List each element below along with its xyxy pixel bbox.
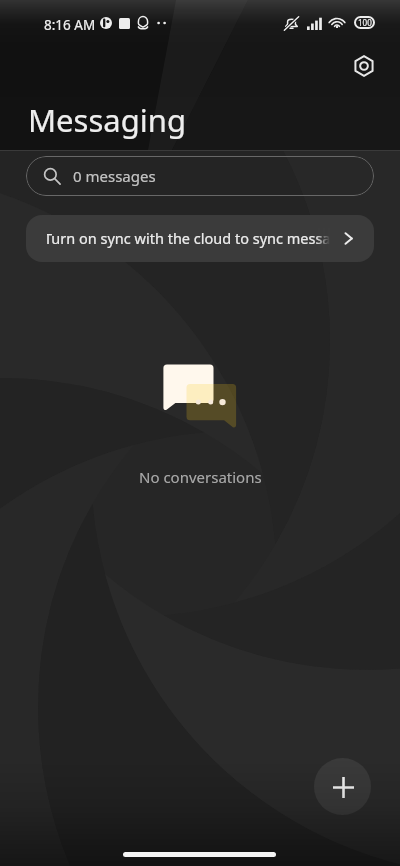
staticText: Messaging bbox=[28, 99, 186, 141]
staticText: No conversations bbox=[139, 467, 262, 487]
staticText: 0 messages bbox=[73, 166, 156, 186]
staticText: 8:16 AM bbox=[44, 16, 96, 34]
staticText: Turn on sync with the cloud to sync mess… bbox=[47, 228, 330, 248]
button[interactable]: Settings bbox=[344, 46, 384, 86]
button[interactable]: 0 messages bbox=[26, 156, 374, 196]
button[interactable]: Turn on sync with the cloud to sync mess… bbox=[26, 215, 374, 262]
staticText: 100 bbox=[358, 17, 372, 28]
button[interactable]: Start new conversation bbox=[314, 758, 371, 815]
